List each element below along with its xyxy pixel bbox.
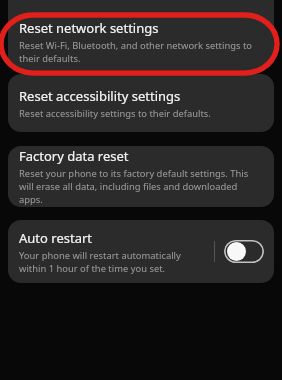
staticText: Reset your phone to its factory default … xyxy=(19,167,260,206)
staticText: Reset Wi-Fi, Bluetooth, and other networ… xyxy=(19,39,261,65)
button[interactable]: Reset accessibility settings xyxy=(8,74,274,132)
staticText: Your phone will restart automatically wi… xyxy=(19,249,210,275)
staticText: Factory data reset xyxy=(19,147,129,165)
button[interactable]: Factory data reset xyxy=(8,146,274,207)
staticText: Auto restart xyxy=(19,229,92,247)
staticText: Reset accessibility settings xyxy=(19,87,181,105)
button[interactable]: Auto restart xyxy=(8,220,274,283)
button[interactable]: Auto restart, off xyxy=(224,240,264,263)
staticText: Reset accessibility settings to their de… xyxy=(19,107,211,120)
button[interactable]: Reset network settings xyxy=(8,0,274,70)
staticText: Reset network settings xyxy=(19,19,159,37)
